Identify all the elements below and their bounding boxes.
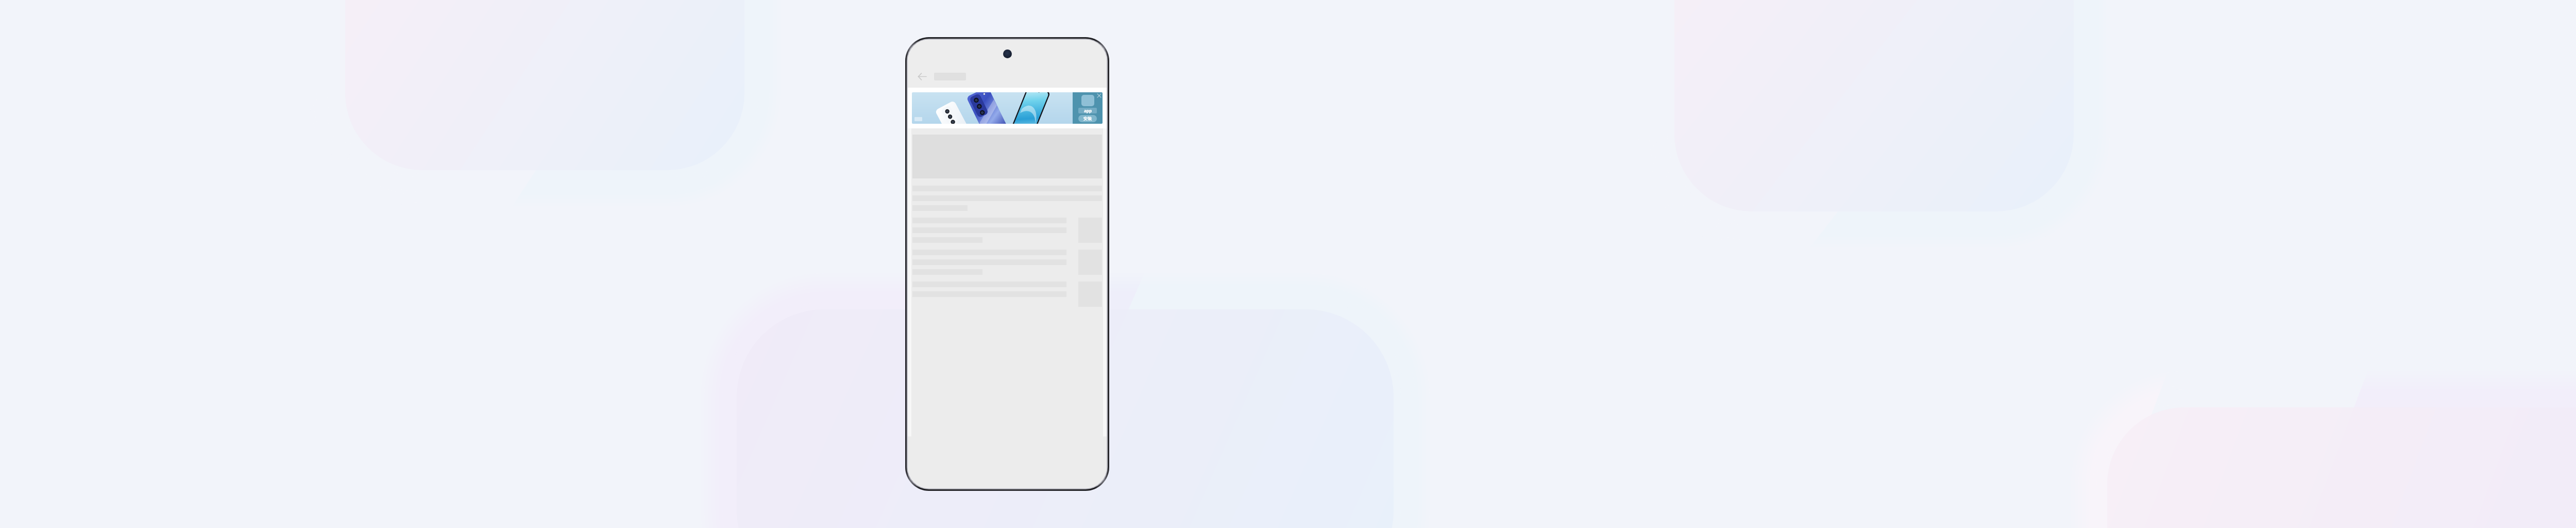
button[interactable]: Back <box>915 70 928 83</box>
button[interactable] <box>912 250 1102 275</box>
button[interactable]: Close ad <box>1096 92 1103 99</box>
button[interactable]: 安装 <box>1078 115 1097 122</box>
button[interactable]: app <box>912 92 1103 124</box>
staticText: app <box>1084 108 1092 113</box>
button[interactable] <box>912 218 1102 243</box>
staticText: 安装 <box>1083 116 1092 121</box>
button[interactable] <box>912 282 1102 307</box>
